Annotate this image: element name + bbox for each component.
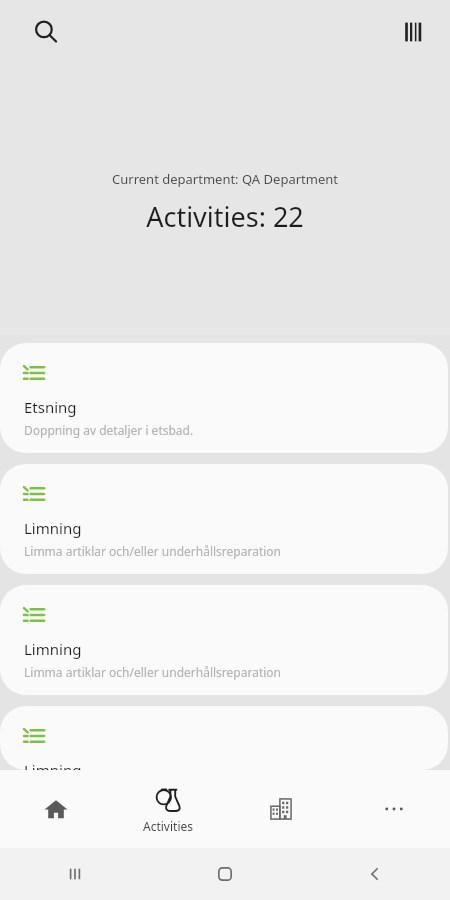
staticText: Limning	[24, 518, 82, 538]
button[interactable]: More	[337, 770, 450, 848]
staticText: Activities	[143, 818, 193, 834]
button[interactable]: Limning	[0, 585, 448, 695]
button[interactable]: Etsning	[0, 343, 448, 453]
button[interactable]: Search	[26, 12, 66, 52]
button[interactable]: Scan barcode	[394, 12, 434, 52]
button[interactable]: Departments	[224, 770, 337, 848]
staticText: Current department: QA Department	[112, 170, 338, 188]
staticText: Limning	[24, 760, 82, 770]
staticText: Activities: 22	[146, 198, 304, 235]
staticText: Doppning av detaljer i etsbad.	[24, 422, 194, 438]
button[interactable]: Home	[0, 770, 112, 848]
staticText: Etsning	[24, 397, 77, 417]
button[interactable]: Activities	[112, 770, 224, 848]
button[interactable]: Limning	[0, 706, 448, 770]
staticText: Limning	[24, 639, 82, 659]
staticText: Limma artiklar och/eller underhållsrepar…	[24, 543, 281, 559]
button[interactable]: Limning	[0, 464, 448, 574]
staticText: Limma artiklar och/eller underhållsrepar…	[24, 664, 281, 680]
